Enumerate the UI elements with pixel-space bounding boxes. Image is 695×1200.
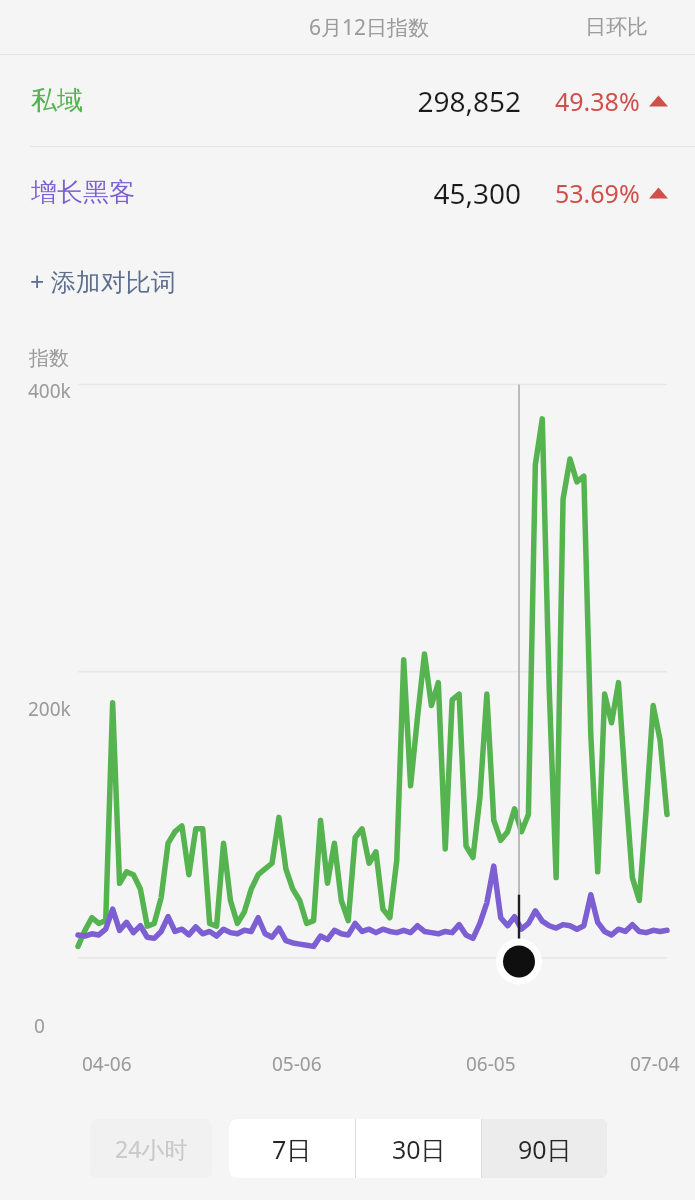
staticText: 日环比 <box>585 14 648 40</box>
staticText: 指数 <box>29 346 69 371</box>
staticText: 07-04 <box>630 1051 680 1077</box>
staticText: 7日 <box>272 1132 312 1166</box>
staticText: 200k <box>28 696 71 722</box>
button[interactable]: 90日 <box>482 1119 607 1178</box>
button[interactable]: 私域 <box>0 55 695 146</box>
staticText: 05-06 <box>272 1051 322 1077</box>
staticText: 45,300 <box>321 174 521 212</box>
staticText: 24小时 <box>115 1133 188 1164</box>
button[interactable]: 7日 <box>229 1119 355 1178</box>
staticText: 49.38% <box>555 84 640 118</box>
staticText: 04-06 <box>82 1051 132 1077</box>
staticText: 53.69% <box>555 176 640 210</box>
staticText: 06-05 <box>466 1051 516 1077</box>
button[interactable]: + 添加对比词 <box>30 238 176 324</box>
button[interactable]: 增长黑客 <box>0 147 695 238</box>
button[interactable]: 30日 <box>356 1119 481 1178</box>
staticText: 6月12日指数 <box>309 13 430 42</box>
staticText: 400k <box>28 378 71 404</box>
staticText: 私域 <box>31 84 83 117</box>
staticText: 增长黑客 <box>31 176 135 209</box>
staticText: 0 <box>34 1013 45 1039</box>
staticText: 30日 <box>392 1132 446 1166</box>
staticText: + 添加对比词 <box>30 264 176 298</box>
button[interactable]: 24小时 <box>90 1119 212 1178</box>
staticText: 298,852 <box>321 82 521 120</box>
staticText: 90日 <box>518 1132 572 1166</box>
